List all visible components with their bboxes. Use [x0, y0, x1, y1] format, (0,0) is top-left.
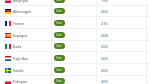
- staticText: Pologne: [13, 79, 27, 84]
- button[interactable]: Pologne: [0, 75, 150, 84]
- staticText: 200: [101, 56, 108, 61]
- staticText: Allemagne: [13, 9, 32, 14]
- staticText: Sain: [56, 21, 63, 25]
- staticText: Espagne: [13, 33, 28, 38]
- staticText: Italie: [13, 44, 22, 49]
- staticText: Pays-Bas: [13, 56, 29, 61]
- staticText: Sain: [56, 79, 63, 83]
- staticText: Sain: [56, 33, 63, 37]
- staticText: Sain: [56, 9, 63, 13]
- staticText: France: [13, 21, 25, 26]
- staticText: Sain: [56, 44, 63, 48]
- button[interactable]: France: [0, 17, 150, 29]
- staticText: 216: [101, 21, 108, 26]
- button[interactable]: Italie: [0, 40, 150, 52]
- button[interactable]: Pays-Bas: [0, 52, 150, 64]
- staticText: Belgique: [13, 0, 28, 3]
- staticText: Sain: [56, 0, 63, 2]
- staticText: 200: [101, 79, 108, 84]
- button[interactable]: Suède: [0, 64, 150, 76]
- button[interactable]: Belgique: [0, 0, 150, 6]
- button[interactable]: Allemagne: [0, 5, 150, 17]
- staticText: Sain: [56, 56, 63, 60]
- staticText: 200: [101, 44, 108, 49]
- staticText: Suède: [13, 68, 24, 73]
- button[interactable]: Espagne: [0, 29, 150, 41]
- staticText: Sain: [56, 68, 63, 72]
- staticText: 208: [101, 33, 108, 38]
- staticText: 200: [101, 68, 108, 73]
- staticText: 196: [101, 0, 108, 3]
- staticText: 204: [101, 9, 108, 14]
